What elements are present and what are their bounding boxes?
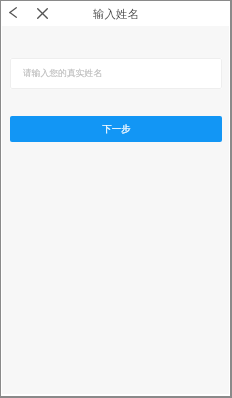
button[interactable]: Close [30, 1, 54, 26]
staticText: 下一步 [102, 123, 131, 135]
staticText: 请输入您的真实姓名 [23, 68, 103, 79]
button[interactable]: 下一步 [10, 116, 222, 142]
button[interactable]: 请输入您的真实姓名 [10, 58, 222, 89]
button[interactable]: Back [1, 1, 25, 26]
staticText: 输入姓名 [93, 7, 139, 21]
